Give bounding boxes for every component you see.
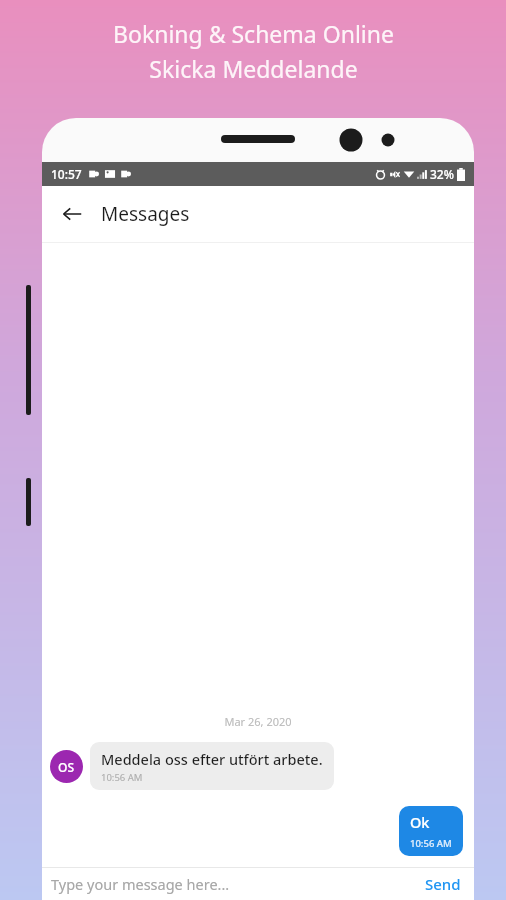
staticText: 10:57 (51, 166, 82, 182)
staticText: Send (425, 874, 461, 894)
staticText: Type your message here... (51, 874, 230, 894)
staticText: Skicka Meddelande (149, 53, 358, 84)
staticText: OS (58, 759, 75, 775)
staticText: Bokning & Schema Online (113, 18, 394, 49)
button[interactable]: Ok (399, 806, 463, 856)
button[interactable]: Send (421, 871, 465, 897)
staticText: Mar 26, 2020 (42, 714, 474, 729)
button[interactable]: Back (50, 192, 94, 236)
staticText: Ok (410, 812, 430, 832)
staticText: 10:56 AM (101, 771, 143, 784)
button[interactable]: Meddela oss efter utfört arbete. (90, 742, 334, 790)
staticText: 10:56 AM (410, 837, 452, 850)
button[interactable]: Type your message here... (51, 874, 421, 894)
staticText: 32% (430, 166, 454, 182)
staticText: Meddela oss efter utfört arbete. (101, 749, 323, 769)
staticText: Messages (101, 201, 190, 227)
